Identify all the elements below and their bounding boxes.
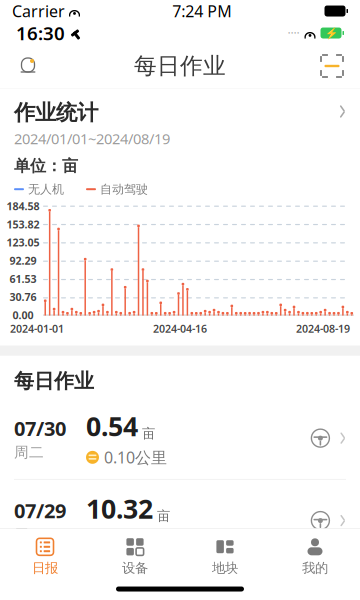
staticText: 亩 bbox=[157, 508, 170, 524]
staticText: 3.40公里 bbox=[104, 529, 167, 550]
staticText: 2024-04-16 bbox=[153, 322, 207, 336]
staticText: 自动驾驶 bbox=[100, 182, 148, 196]
button[interactable]: 07/30 bbox=[0, 397, 360, 479]
button[interactable]: 地块 bbox=[180, 535, 270, 578]
staticText: 61.53 bbox=[9, 272, 36, 286]
staticText: 07/29 bbox=[14, 497, 66, 524]
button[interactable]: 我的 bbox=[270, 535, 360, 578]
button[interactable]: Notifications bbox=[6, 44, 50, 88]
staticText: 亩 bbox=[142, 590, 155, 600]
staticText: 周一 bbox=[14, 526, 44, 544]
staticText: 每日作业 bbox=[14, 369, 94, 393]
button[interactable]: 作业统计 bbox=[0, 88, 360, 156]
staticText: 0.54 bbox=[86, 408, 138, 444]
staticText: 30.76 bbox=[9, 290, 36, 304]
button[interactable]: 日报 bbox=[0, 535, 90, 578]
staticText: 123.05 bbox=[6, 235, 39, 249]
button[interactable]: 07/29 bbox=[0, 480, 360, 561]
staticText: ⚡ bbox=[324, 27, 337, 39]
staticText: 07/30 bbox=[14, 415, 66, 441]
button[interactable]: Scan bbox=[310, 44, 354, 88]
staticText: 184.58 bbox=[6, 199, 39, 213]
staticText: 每日作业 bbox=[134, 52, 226, 80]
button[interactable]: 设备 bbox=[90, 535, 180, 578]
staticText: 作业统计 bbox=[14, 99, 98, 126]
staticText: 亩 bbox=[142, 425, 155, 442]
staticText: Carrier bbox=[12, 0, 65, 22]
staticText: 10.32 bbox=[86, 491, 153, 526]
staticText: 4.32 bbox=[86, 573, 138, 600]
staticText: 153.82 bbox=[6, 217, 39, 231]
staticText: 2024-01-01 bbox=[10, 322, 64, 336]
staticText: 0.10公里 bbox=[104, 447, 167, 468]
staticText: 我的 bbox=[302, 560, 328, 576]
staticText: 单位：亩 bbox=[14, 156, 78, 176]
staticText: 2024-08-19 bbox=[296, 322, 350, 336]
staticText: 无人机 bbox=[28, 182, 64, 196]
staticText: 2024/01/01~2024/08/19 bbox=[14, 129, 170, 148]
staticText: 16:30 bbox=[16, 21, 65, 45]
staticText: 地块 bbox=[212, 560, 238, 576]
staticText: 92.29 bbox=[9, 253, 36, 268]
staticText: 设备 bbox=[122, 560, 148, 576]
staticText: ···· bbox=[287, 25, 299, 41]
button[interactable]: 07/28 bbox=[0, 562, 360, 600]
staticText: 日报 bbox=[32, 560, 58, 576]
staticText: 0.00 bbox=[12, 308, 33, 322]
staticText: 7:24 PM bbox=[172, 0, 232, 22]
staticText: 周二 bbox=[14, 443, 44, 461]
